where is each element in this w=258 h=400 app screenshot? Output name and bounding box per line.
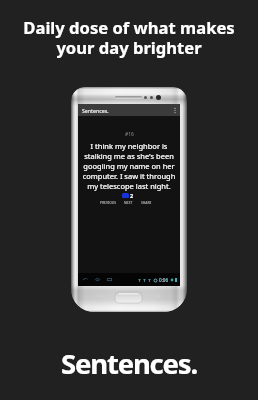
staticText: 0:06 (159, 277, 169, 283)
button[interactable]: SHARE (141, 200, 152, 204)
staticText: PREVIOUS (100, 200, 116, 204)
button[interactable]: PREVIOUS (100, 200, 116, 204)
staticText: SHARE (141, 200, 152, 204)
staticText: Sentences. (82, 107, 109, 114)
staticText: Daily dose of what makes your day bright… (0, 16, 258, 59)
button[interactable]: Recents (106, 276, 113, 283)
staticText: #16 (125, 131, 134, 138)
button[interactable]: Back (82, 276, 89, 283)
staticText: I think my neighbor is stalking me as sh… (81, 141, 177, 191)
button[interactable]: Sentences. (78, 104, 180, 116)
button[interactable]: Home (94, 276, 101, 283)
button[interactable]: Home (115, 292, 142, 303)
button[interactable]: NEXT (124, 200, 133, 204)
other: More options (174, 107, 176, 114)
staticText: Sentences. (0, 345, 258, 382)
staticText: NEXT (124, 200, 133, 204)
staticText: 2 (130, 192, 134, 199)
